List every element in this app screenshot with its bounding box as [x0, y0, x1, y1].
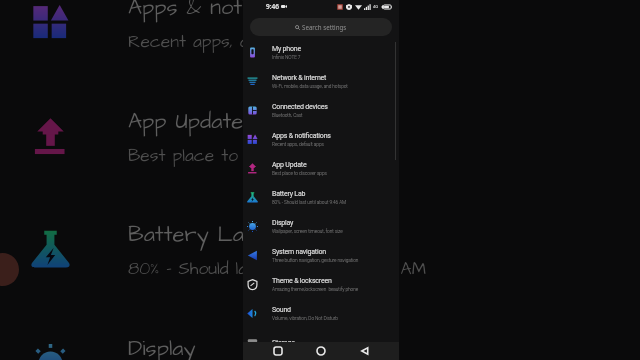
staticText: Display: [128, 333, 196, 360]
button[interactable]: Theme & lockscreen: [243, 270, 399, 299]
staticText: Three button navigation, gesture navigat…: [272, 258, 359, 264]
staticText: Display: [272, 219, 294, 227]
staticText: Amazing theme,lockscreen beautify phone: [272, 287, 359, 293]
staticText: App Update: [128, 106, 244, 137]
staticText: Best place to discover apps: [272, 171, 327, 177]
staticText: Search settings: [302, 23, 347, 31]
button[interactable]: App Update: [243, 154, 399, 183]
staticText: System navigation: [272, 248, 326, 256]
staticText: Infinix NOTE 7: [272, 55, 301, 61]
staticText: My phone: [272, 45, 301, 53]
staticText: Wallpaper, screen timeout, font size: [272, 229, 343, 235]
button[interactable]: Network & internet: [243, 67, 399, 96]
staticText: Battery Lab: [272, 190, 306, 198]
button[interactable]: Display: [243, 212, 399, 241]
staticText: 9:46: [266, 2, 279, 11]
staticText: Volume, vibration, Do Not Disturb: [272, 316, 338, 322]
staticText: App Update: [272, 161, 307, 169]
button[interactable]: Connected devices: [243, 96, 399, 125]
button[interactable]: Apps & notifications: [243, 125, 399, 154]
staticText: Recent apps, default apps: [272, 142, 324, 148]
staticText: Apps & notifications: [128, 0, 334, 23]
staticText: Bluetooth, Cast: [272, 113, 303, 119]
button[interactable]: Battery Lab: [243, 183, 399, 212]
staticText: 80% - Should last until about 9:46 AM: [128, 257, 427, 281]
button[interactable]: Storage: [243, 328, 399, 357]
staticText: Battery Lab: [128, 219, 257, 250]
staticText: Network & internet: [272, 74, 327, 82]
staticText: Apps & notifications: [272, 132, 331, 140]
staticText: Storage: [272, 339, 295, 347]
staticText: Sound: [272, 306, 291, 314]
staticText: 4G: [373, 4, 379, 9]
button[interactable]: Search settings: [250, 18, 392, 36]
button[interactable]: Sound: [243, 299, 399, 328]
staticText: Theme & lockscreen: [272, 277, 332, 285]
button[interactable]: Back: [356, 342, 374, 360]
staticText: 80% - Should last until about 9:46 AM: [272, 200, 347, 206]
button[interactable]: System navigation: [243, 241, 399, 270]
staticText: Best place to discover apps: [128, 144, 358, 168]
staticText: Wi-Fi, mobile, data usage, and hotspot: [272, 84, 348, 90]
staticText: Connected devices: [272, 103, 328, 111]
button[interactable]: Home: [312, 342, 330, 360]
button[interactable]: My phone: [243, 38, 399, 67]
staticText: Recent apps, default apps: [128, 30, 340, 54]
button[interactable]: Recents: [269, 342, 287, 360]
